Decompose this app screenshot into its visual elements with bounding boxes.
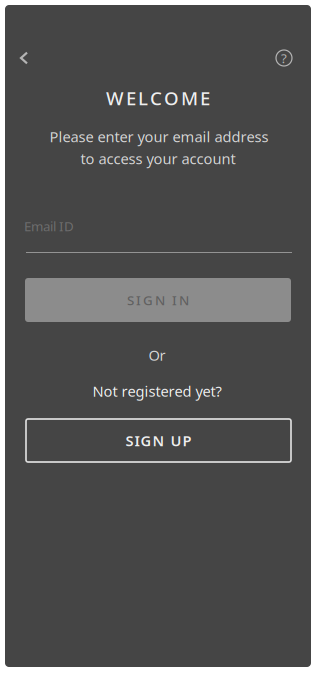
button[interactable]: Email ID [24, 211, 292, 253]
button[interactable]: Sign Up [26, 419, 291, 462]
staticText: ? [281, 49, 287, 67]
staticText: Not registered yet? [92, 381, 221, 401]
staticText: Email ID [24, 217, 74, 235]
button[interactable]: Back [6, 40, 42, 76]
button[interactable]: Sign In [25, 278, 291, 322]
staticText: to access your account [80, 149, 235, 168]
staticText: Please enter your email address [49, 127, 268, 146]
staticText: S I G N I N [127, 291, 189, 309]
staticText: W E L C O M E [106, 86, 210, 110]
button[interactable]: Help [266, 40, 302, 76]
staticText: Or [148, 345, 165, 365]
staticText: S I G N U P [125, 431, 191, 450]
